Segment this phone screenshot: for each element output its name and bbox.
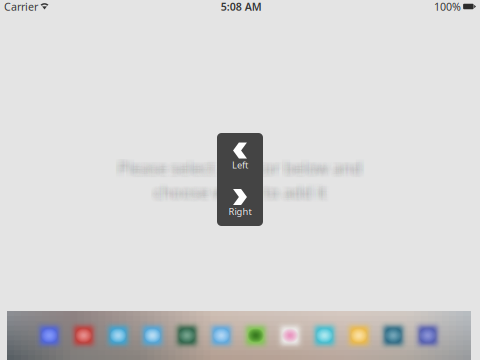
staticText: Please select a vector below and xyxy=(121,159,365,180)
staticText: choose where to add it xyxy=(152,180,325,201)
staticText: Please select a vector below and xyxy=(116,160,360,182)
button[interactable]: Right xyxy=(217,179,263,226)
staticText: choose where to add it xyxy=(153,178,326,199)
staticText: choose where to add it xyxy=(150,183,323,204)
staticText: choose where to add it xyxy=(153,183,326,204)
staticText: Please select a vector below and xyxy=(116,156,360,177)
staticText: Please select a vector below and xyxy=(118,159,362,180)
staticText: Please select a vector below and xyxy=(115,159,359,180)
staticText: Please select a vector below and xyxy=(115,157,359,178)
button[interactable]: LinkedIn xyxy=(379,321,408,350)
button[interactable]: Facebook xyxy=(413,321,442,350)
staticText: choose where to add it xyxy=(155,181,328,203)
button[interactable]: Messages xyxy=(103,321,133,350)
staticText: Carrier xyxy=(4,0,38,14)
button[interactable]: Safari xyxy=(35,321,64,350)
button[interactable]: Weather xyxy=(310,321,339,350)
staticText: Please select a vector below and xyxy=(116,154,360,175)
staticText: choose where to add it xyxy=(157,178,330,199)
staticText: choose where to add it xyxy=(152,185,325,206)
staticText: choose where to add it xyxy=(153,185,326,206)
staticText: choose where to add it xyxy=(155,180,328,201)
staticText: choose where to add it xyxy=(152,181,325,203)
staticText: choose where to add it xyxy=(150,180,323,201)
staticText: 5:08 AM xyxy=(221,0,262,14)
staticText: choose where to add it xyxy=(153,180,326,201)
button[interactable]: Music xyxy=(69,321,98,350)
staticText: Please select a vector below and xyxy=(115,160,359,182)
staticText: Please select a vector below and xyxy=(120,159,364,180)
staticText: choose where to add it xyxy=(155,183,328,204)
staticText: choose where to add it xyxy=(157,183,330,204)
button[interactable]: Left xyxy=(217,133,263,179)
button[interactable]: Mail xyxy=(207,321,236,350)
staticText: Please select a vector below and xyxy=(115,154,359,175)
staticText: choose where to add it xyxy=(155,178,328,199)
staticText: choose where to add it xyxy=(152,183,325,204)
button[interactable]: Photos xyxy=(275,321,305,350)
staticText: Please select a vector below and xyxy=(116,159,360,180)
staticText: Please select a vector below and xyxy=(121,157,365,178)
staticText: choose where to add it xyxy=(157,181,330,203)
staticText: Please select a vector below and xyxy=(120,154,364,175)
staticText: Please select a vector below and xyxy=(116,157,360,178)
staticText: Please select a vector below and xyxy=(121,154,365,175)
staticText: Please select a vector below and xyxy=(118,154,362,175)
staticText: choose where to add it xyxy=(153,181,326,203)
button[interactable]: Messenger xyxy=(241,321,270,350)
staticText: Please select a vector below and xyxy=(120,157,364,178)
button[interactable]: Twitter xyxy=(138,321,167,350)
staticText: choose where to add it xyxy=(157,185,330,206)
staticText: Left xyxy=(232,159,248,171)
staticText: Please select a vector below and xyxy=(120,160,364,182)
staticText: Please select a vector below and xyxy=(121,156,365,177)
staticText: choose where to add it xyxy=(150,185,323,206)
staticText: 100% xyxy=(434,0,461,14)
staticText: Right xyxy=(228,205,251,217)
staticText: Please select a vector below and xyxy=(118,160,362,182)
staticText: Please select a vector below and xyxy=(118,157,362,178)
staticText: choose where to add it xyxy=(150,178,323,199)
staticText: Please select a vector below and xyxy=(121,160,365,182)
staticText: choose where to add it xyxy=(152,178,325,199)
button[interactable]: Reminders xyxy=(344,321,374,350)
staticText: Please select a vector below and xyxy=(118,156,362,177)
staticText: choose where to add it xyxy=(157,180,330,201)
staticText: Please select a vector below and xyxy=(115,156,359,177)
staticText: choose where to add it xyxy=(150,181,323,203)
button[interactable]: Notes xyxy=(172,321,202,350)
staticText: choose where to add it xyxy=(155,185,328,206)
staticText: Please select a vector below and xyxy=(120,156,364,177)
